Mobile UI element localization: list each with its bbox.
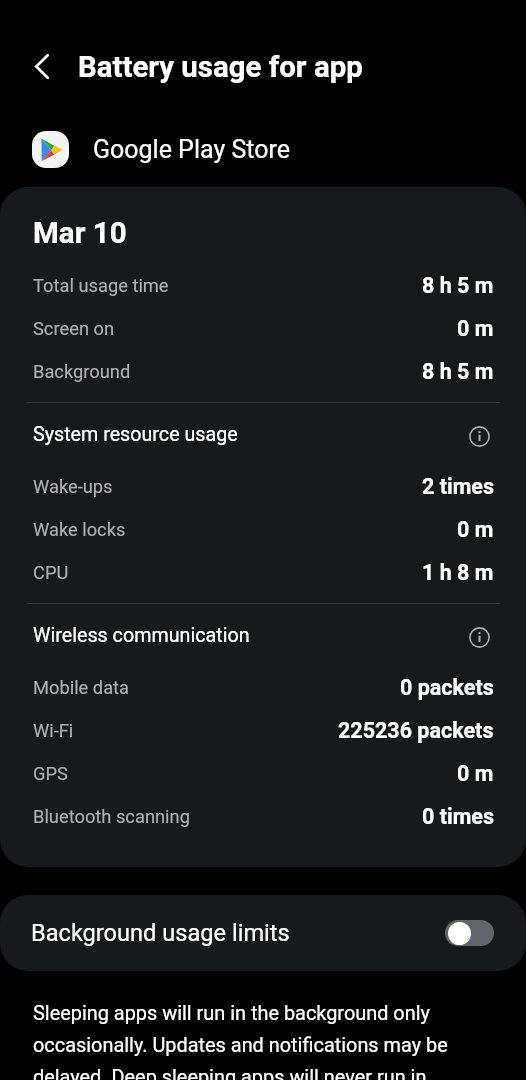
button[interactable]: Background usage limits [0, 895, 526, 971]
staticText: 0 m [457, 316, 494, 341]
staticText: Bluetooth scanning [33, 806, 190, 827]
staticText: Google Play Store [93, 135, 290, 164]
staticText: Wi-Fi [33, 720, 74, 741]
staticText: CPU [33, 562, 69, 583]
staticText: Battery usage for app [78, 50, 363, 84]
button[interactable]: Mobile data [0, 666, 526, 709]
button[interactable]: GPS [0, 752, 526, 795]
staticText: Wireless communication [33, 624, 250, 647]
staticText: Background [33, 361, 131, 382]
staticText: 1 h 8 m [422, 560, 494, 585]
staticText: GPS [33, 763, 68, 784]
button[interactable]: Wireless communication [0, 604, 526, 666]
button[interactable]: Wake-ups [0, 465, 526, 508]
button[interactable]: CPU [0, 551, 526, 594]
staticText: Wake locks [33, 519, 126, 540]
button[interactable]: Google Play Store [0, 124, 526, 174]
button[interactable]: Wi-Fi [0, 709, 526, 752]
staticText: 0 m [457, 761, 494, 786]
staticText: Sleeping apps will run in the background… [33, 1002, 460, 1080]
staticText: Screen on [33, 318, 115, 339]
button[interactable]: Info [469, 426, 490, 447]
button[interactable]: Wake locks [0, 508, 526, 551]
button[interactable]: Background [0, 350, 526, 393]
staticText: 0 packets [400, 675, 494, 700]
button[interactable]: Screen on [0, 307, 526, 350]
staticText: Wake-ups [33, 476, 113, 497]
staticText: Background usage limits [31, 919, 290, 947]
staticText: Total usage time [33, 275, 169, 296]
button[interactable]: Back [21, 45, 63, 87]
staticText: 2 times [422, 474, 494, 499]
button[interactable]: System resource usage [0, 403, 526, 465]
staticText: 8 h 5 m [422, 273, 494, 298]
button[interactable]: Info [469, 627, 490, 648]
button[interactable]: Bluetooth scanning [0, 795, 526, 838]
staticText: Mobile data [33, 677, 130, 698]
staticText: 0 m [457, 517, 494, 542]
staticText: 8 h 5 m [422, 359, 494, 384]
staticText: 225236 packets [338, 718, 494, 743]
staticText: Mar 10 [33, 216, 127, 251]
button[interactable]: Total usage time [0, 264, 526, 307]
button[interactable]: Background usage limits toggle [445, 920, 494, 946]
staticText: 0 times [422, 804, 494, 829]
staticText: System resource usage [33, 423, 238, 446]
